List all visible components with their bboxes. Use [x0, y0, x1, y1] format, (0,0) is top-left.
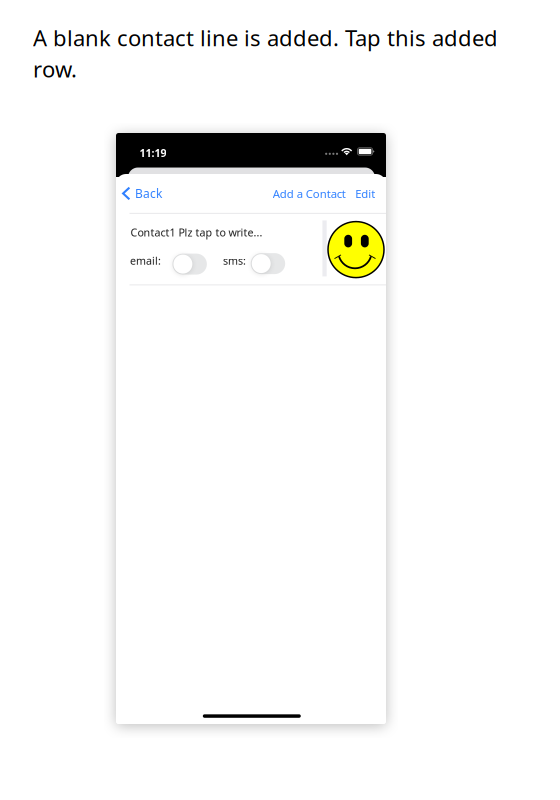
staticText: email: [130, 253, 161, 268]
staticText: Edit [355, 186, 375, 201]
staticText: Contact1 Plz tap to write... [130, 225, 262, 240]
staticText: 11:19 [139, 146, 166, 160]
button[interactable]: sms [251, 253, 285, 274]
staticText: sms: [223, 253, 246, 268]
button[interactable]: Edit [351, 178, 379, 208]
staticText: Back [135, 185, 162, 201]
button[interactable]: email [172, 254, 207, 275]
staticText: A blank contact line is added. Tap this … [33, 23, 498, 84]
button[interactable]: Add a Contact [269, 178, 351, 208]
button[interactable]: Contact1 Plz tap to write... [116, 213, 386, 285]
staticText: Add a Contact [273, 186, 346, 201]
button[interactable]: Back [116, 178, 170, 208]
